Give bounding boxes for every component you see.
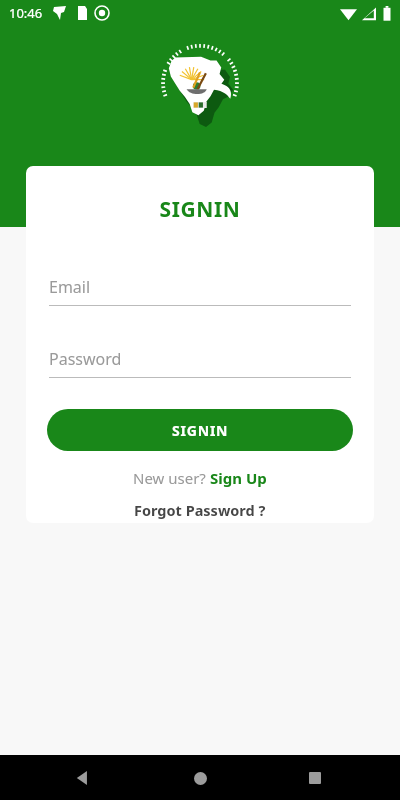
staticText: SIGNIN bbox=[172, 421, 229, 440]
button[interactable]: Home bbox=[180, 758, 220, 798]
button[interactable]: SIGNIN bbox=[47, 409, 353, 451]
staticText: Password bbox=[49, 348, 122, 370]
button[interactable]: Sign Up bbox=[210, 468, 267, 488]
staticText: 10:46 bbox=[9, 4, 43, 22]
button[interactable]: Forgot Password ? bbox=[134, 500, 266, 520]
staticText: New user? bbox=[133, 468, 210, 488]
staticText: Forgot Password ? bbox=[134, 500, 266, 520]
button[interactable]: Recent apps bbox=[295, 758, 335, 798]
staticText: Email bbox=[49, 276, 91, 298]
button[interactable]: Back bbox=[63, 758, 103, 798]
staticText: Sign Up bbox=[210, 468, 267, 488]
staticText: SIGNIN bbox=[26, 195, 374, 224]
